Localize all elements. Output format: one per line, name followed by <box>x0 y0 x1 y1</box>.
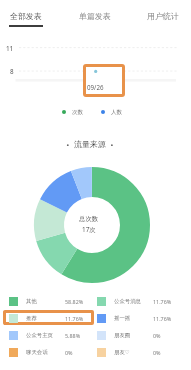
staticText: 朋友圈 <box>114 332 131 339</box>
button[interactable] <box>91 310 182 325</box>
staticText: 推荐 <box>26 315 37 322</box>
staticText: 聊天会话 <box>26 349 48 356</box>
staticText: 8 <box>10 67 14 76</box>
staticText: 11.76% <box>153 315 172 322</box>
button[interactable]: 用户统计 <box>128 0 191 29</box>
button[interactable] <box>3 293 94 308</box>
staticText: 朋友♡ <box>114 349 130 356</box>
button[interactable]: 单篇发表 <box>60 0 129 29</box>
staticText: 58.82% <box>65 298 84 305</box>
staticText: 其他 <box>26 298 37 305</box>
staticText: 11.76% <box>65 315 84 322</box>
button[interactable] <box>91 327 182 342</box>
button[interactable] <box>3 344 94 359</box>
staticText: 人数 <box>111 109 123 116</box>
staticText: 公众号消息 <box>114 298 141 305</box>
staticText: 公众号主页 <box>26 332 53 339</box>
button[interactable]: 09/26 <box>83 64 125 97</box>
staticText: 流量来源 <box>74 139 106 149</box>
button[interactable] <box>91 293 182 308</box>
staticText: 总次数 <box>79 215 99 223</box>
staticText: 0% <box>153 332 161 339</box>
staticText: 0% <box>153 349 161 356</box>
button[interactable] <box>3 310 94 325</box>
staticText: 全部发表 <box>10 11 42 21</box>
staticText: 摇一摇 <box>114 315 131 322</box>
button[interactable]: 全部发表 <box>0 0 60 29</box>
staticText: 11 <box>6 44 14 53</box>
staticText: 17次 <box>82 225 96 234</box>
staticText: 单篇发表 <box>79 11 111 21</box>
staticText: 次数 <box>72 109 84 116</box>
staticText: 0% <box>65 349 73 356</box>
staticText: 11.76% <box>153 298 172 305</box>
staticText: 09/26 <box>87 83 104 91</box>
staticText: 5.88% <box>65 332 81 339</box>
button[interactable] <box>3 327 94 342</box>
staticText: 用户统计 <box>147 11 179 21</box>
button[interactable] <box>91 344 182 359</box>
